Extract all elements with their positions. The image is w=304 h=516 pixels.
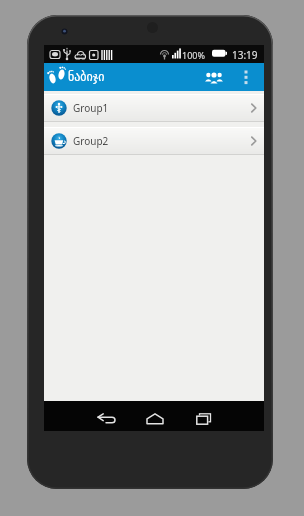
button[interactable] bbox=[199, 63, 229, 91]
staticText: 100% bbox=[182, 49, 205, 61]
staticText: Group2 bbox=[73, 134, 109, 148]
staticText: Group1 bbox=[73, 101, 109, 115]
staticText: ნაბიჯი bbox=[68, 70, 105, 84]
staticText: 13:19 bbox=[232, 48, 258, 62]
button[interactable]: Group2 bbox=[44, 127, 264, 155]
button[interactable] bbox=[44, 63, 72, 91]
button[interactable] bbox=[179, 401, 228, 431]
button[interactable] bbox=[130, 401, 179, 431]
button[interactable] bbox=[235, 63, 257, 91]
button[interactable] bbox=[81, 401, 130, 431]
button[interactable]: Group1 bbox=[44, 94, 264, 122]
